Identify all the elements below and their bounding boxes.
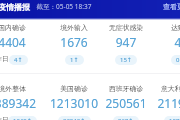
staticText: 境外输入 xyxy=(38,23,110,32)
staticText: 15↑ xyxy=(120,56,132,64)
staticText: 昨日 xyxy=(0,55,9,63)
staticText: 国内确诊 xyxy=(0,23,48,32)
button[interactable]: 4↑ xyxy=(9,55,28,65)
button[interactable]: 0 xyxy=(171,55,180,65)
staticText: 1075↑ xyxy=(169,117,180,120)
staticText: 4↑ xyxy=(14,56,23,64)
staticText: 疫情播报 xyxy=(0,2,30,12)
button[interactable] xyxy=(0,0,180,18)
staticText: 查看更多 xyxy=(163,2,180,11)
staticText: 境外整体 xyxy=(0,84,48,93)
staticText: 947 xyxy=(90,34,162,50)
button[interactable]: 15↑ xyxy=(115,55,137,65)
staticText: 0 xyxy=(176,56,180,64)
button[interactable]: 查看更多 xyxy=(163,2,180,11)
staticText: 250561 xyxy=(90,95,162,111)
button[interactable]: 23042↑ xyxy=(58,116,91,120)
staticText: 西班牙确诊 xyxy=(90,84,162,93)
staticText: 无症状感染 xyxy=(90,23,162,32)
staticText: 4 xyxy=(142,34,180,50)
staticText: 美国确诊 xyxy=(38,84,110,93)
staticText: 达到 xyxy=(142,23,180,32)
staticText: 867↑ xyxy=(118,117,134,120)
staticText: 意大利确诊 xyxy=(142,84,180,93)
button[interactable]: 1049↑ xyxy=(8,116,37,120)
staticText: 1↑ xyxy=(70,56,79,64)
button[interactable]: 1↑ xyxy=(65,55,84,65)
staticText: 1213010 xyxy=(38,95,110,111)
staticText: 4404 xyxy=(0,34,48,50)
staticText: 截至：05-05 18:37 xyxy=(36,2,92,11)
staticText: 23042↑ xyxy=(63,117,86,120)
staticText: 1049↑ xyxy=(13,117,32,120)
staticText: 3389342 xyxy=(0,95,48,111)
staticText: 1676 xyxy=(38,34,110,50)
staticText: 211938 xyxy=(142,95,180,111)
button[interactable]: 1075↑ xyxy=(164,116,180,120)
staticText: 昨日 xyxy=(0,116,9,120)
button[interactable]: 867↑ xyxy=(113,116,139,120)
